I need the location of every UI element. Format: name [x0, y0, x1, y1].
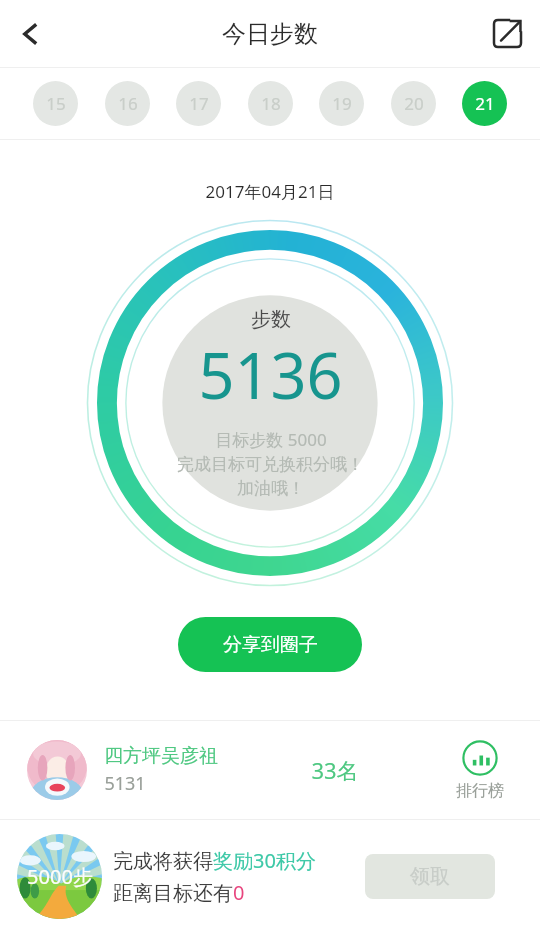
button[interactable]: 排行榜: [456, 740, 504, 801]
staticText: 四方坪吴彦祖: [104, 744, 218, 768]
button[interactable]: 领取: [365, 854, 495, 899]
staticText: 今日步数: [222, 19, 318, 49]
staticText: 完成目标可兑换积分哦！: [177, 454, 364, 475]
staticText: 5000步: [27, 863, 93, 890]
staticText: 5136: [198, 332, 343, 418]
button[interactable]: Back: [0, 0, 62, 67]
staticText: 20: [404, 92, 424, 115]
button[interactable]: 四方坪吴彦祖: [0, 721, 540, 819]
staticText: 目标步数 5000: [215, 428, 327, 451]
button[interactable]: Share: [474, 0, 540, 67]
staticText: 完成将获得奖励30积分: [113, 847, 316, 874]
staticText: 16: [118, 92, 138, 115]
staticText: 5131: [104, 771, 146, 796]
button[interactable]: 21: [462, 81, 507, 126]
staticText: 19: [332, 92, 352, 115]
staticText: 15: [46, 92, 66, 115]
button[interactable]: 15: [33, 81, 78, 126]
staticText: 领取: [410, 864, 450, 889]
button[interactable]: 18: [248, 81, 293, 126]
staticText: 排行榜: [456, 781, 504, 801]
staticText: 33名: [311, 755, 359, 785]
staticText: 步数: [251, 307, 291, 332]
staticText: 分享到圈子: [223, 633, 318, 657]
button[interactable]: 17: [176, 81, 221, 126]
staticText: 2017年04月21日: [0, 180, 540, 203]
staticText: 加油哦！: [237, 478, 305, 499]
button[interactable]: 分享到圈子: [178, 617, 362, 672]
staticText: 距离目标还有0: [113, 879, 245, 906]
staticText: 18: [261, 92, 281, 115]
button[interactable]: 16: [105, 81, 150, 126]
staticText: 21: [475, 92, 495, 115]
staticText: 17: [189, 92, 209, 115]
button[interactable]: 19: [319, 81, 364, 126]
button[interactable]: 20: [391, 81, 436, 126]
